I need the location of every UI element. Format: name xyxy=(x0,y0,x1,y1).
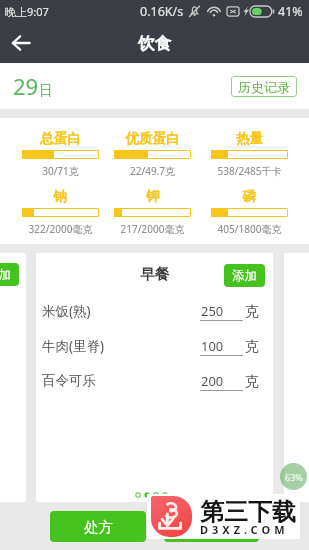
button[interactable]: 处方 xyxy=(50,511,146,542)
staticText: 405/1800毫克 xyxy=(211,222,288,236)
staticText: 磷 xyxy=(211,188,288,205)
staticText: 217/2000毫克 xyxy=(114,222,191,236)
staticText: 热量 xyxy=(211,130,288,147)
staticText: 添加 xyxy=(232,268,257,284)
staticText: 100 xyxy=(201,337,224,355)
staticText: 克 xyxy=(245,338,259,356)
staticText: 处方 xyxy=(84,518,113,536)
staticText: 538/2485千卡 xyxy=(211,164,288,178)
staticText: 63% xyxy=(285,471,303,483)
button[interactable]: 添加 xyxy=(0,263,19,286)
staticText: 克 xyxy=(245,373,259,391)
staticText: 克 xyxy=(245,303,259,321)
staticText: 30/71克 xyxy=(22,164,99,178)
staticText: 250 xyxy=(201,302,224,320)
staticText: 牛肉(里脊) xyxy=(42,337,105,355)
staticText: 饮食 xyxy=(138,33,171,54)
staticText: 22/49.7克 xyxy=(114,164,191,178)
staticText: 米饭(熟) xyxy=(42,302,91,320)
staticText: 百令可乐 xyxy=(42,372,96,389)
staticText: 第三下载 xyxy=(200,497,296,527)
staticText: 日 xyxy=(39,82,53,100)
button[interactable]: Back xyxy=(6,28,36,58)
staticText: 29 xyxy=(13,71,39,101)
button[interactable]: 历史记录 xyxy=(231,76,297,97)
staticText: 钾 xyxy=(114,188,191,205)
button[interactable]: 记录 xyxy=(164,511,259,542)
staticText: 200 xyxy=(201,372,224,390)
staticText: 晚上9:07 xyxy=(5,4,49,19)
button[interactable]: 添加 xyxy=(224,264,265,287)
staticText: 322/2000毫克 xyxy=(22,222,99,236)
staticText: 总蛋白 xyxy=(22,130,99,147)
staticText: 钠 xyxy=(22,188,99,205)
staticText: D3XZ.COM xyxy=(200,522,289,537)
staticText: 早餐 xyxy=(36,265,273,283)
staticText: 添加 xyxy=(0,267,11,283)
staticText: 41% xyxy=(278,3,303,20)
staticText: 0.16K/s xyxy=(140,3,184,20)
staticText: 优质蛋白 xyxy=(114,130,191,147)
staticText: 记录 xyxy=(197,518,226,536)
staticText: 历史记录 xyxy=(238,79,290,95)
